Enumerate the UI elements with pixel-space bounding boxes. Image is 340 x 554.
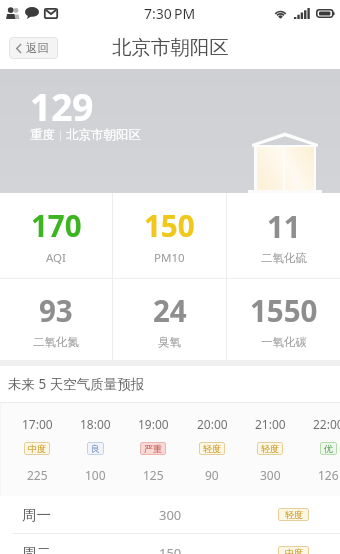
staticText: 重度	[30, 127, 55, 143]
staticText: 11	[267, 206, 301, 246]
button[interactable]: 周一	[0, 496, 340, 533]
staticText: 返回	[26, 41, 49, 55]
staticText: 一氧化碳	[261, 335, 307, 349]
button[interactable]: 周二	[0, 534, 340, 554]
staticText: 170	[31, 205, 82, 245]
staticText: AQI	[46, 250, 66, 266]
staticText: 7:30 PM	[144, 4, 196, 23]
staticText: 150	[159, 544, 182, 554]
staticText: 20:00	[197, 416, 228, 432]
staticText: 225	[27, 467, 48, 483]
button[interactable]: 19:00	[124, 403, 182, 496]
button[interactable]: 17:00	[8, 403, 66, 496]
staticText: 93	[39, 290, 73, 330]
staticText: 18:00	[80, 416, 111, 432]
staticText: 周二	[22, 544, 51, 554]
button[interactable]: 20:00	[183, 403, 241, 496]
staticText: 24	[153, 290, 187, 330]
button[interactable]: 18:00	[66, 403, 124, 496]
staticText: 21:00	[255, 416, 286, 432]
button[interactable]: 1550	[227, 279, 340, 360]
staticText: 中度	[285, 547, 303, 554]
staticText: 轻度	[285, 509, 303, 520]
button[interactable]: 24	[113, 279, 226, 360]
staticText: 优	[324, 443, 333, 454]
staticText: 129	[30, 81, 94, 131]
staticText: 19:00	[138, 416, 169, 432]
staticText: 22:00	[313, 416, 340, 432]
staticText: 300	[260, 467, 281, 483]
button[interactable]: 93	[0, 279, 112, 360]
staticText: 126	[318, 467, 339, 483]
staticText: 17:00	[22, 416, 53, 432]
staticText: 未来 5 天空气质量预报	[8, 375, 145, 393]
staticText: 1550	[250, 290, 318, 330]
staticText: 良	[91, 443, 100, 454]
staticText: 轻度	[261, 443, 279, 454]
staticText: 轻度	[203, 443, 221, 454]
button[interactable]: 22:00	[299, 403, 340, 496]
button[interactable]: 返回	[9, 37, 58, 59]
staticText: 北京市朝阳区	[112, 35, 229, 60]
staticText: 臭氧	[158, 335, 181, 349]
staticText: 125	[143, 467, 164, 483]
staticText: 严重	[144, 443, 162, 454]
staticText: 150	[144, 205, 195, 245]
staticText: 北京市朝阳区	[66, 127, 141, 143]
staticText: 中度	[28, 443, 46, 454]
button[interactable]: 21:00	[241, 403, 299, 496]
staticText: PM10	[154, 250, 185, 266]
staticText: 二氧化硫	[261, 251, 307, 265]
staticText: 100	[85, 467, 106, 483]
staticText: 90	[205, 467, 219, 483]
staticText: 周一	[22, 506, 51, 524]
button[interactable]: 170	[0, 193, 112, 278]
staticText: 二氧化氮	[33, 335, 79, 349]
staticText: 300	[159, 506, 182, 524]
button[interactable]: 150	[113, 193, 226, 278]
button[interactable]: 11	[227, 193, 340, 278]
